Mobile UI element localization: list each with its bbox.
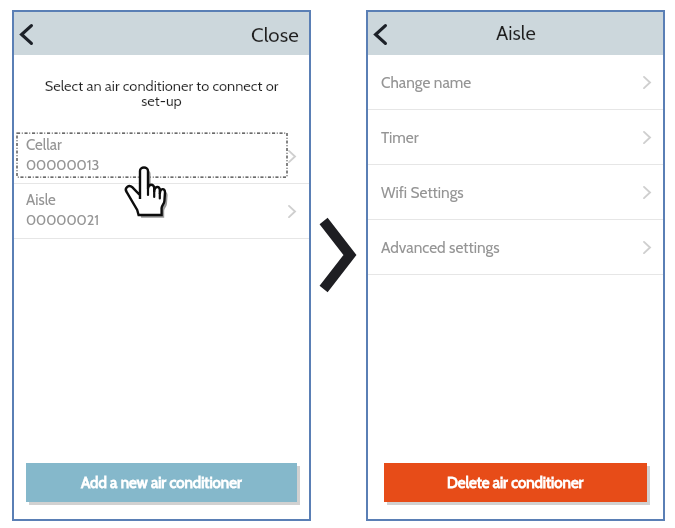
staticText: Add a new air conditioner (81, 474, 242, 492)
staticText: 00000013 (26, 156, 100, 174)
button[interactable]: Aisle (12, 184, 311, 238)
staticText: Aisle (26, 191, 56, 209)
button[interactable]: Wifi Settings (366, 165, 665, 219)
staticText: Advanced settings (381, 238, 500, 257)
button[interactable]: Change name (366, 55, 665, 109)
button[interactable]: Back (12, 10, 52, 55)
staticText: Timer (381, 128, 419, 147)
staticText: Wifi Settings (381, 183, 464, 202)
staticText: Change name (381, 73, 472, 92)
button[interactable]: Delete air conditioner (384, 463, 647, 502)
staticText: Select an air conditioner to connect or … (34, 77, 289, 109)
staticText: Close (251, 22, 299, 47)
staticText: 00000021 (26, 211, 100, 229)
staticText: Aisle (496, 21, 536, 45)
button[interactable]: Advanced settings (366, 220, 665, 274)
staticText: Delete air conditioner (447, 474, 584, 492)
button[interactable]: Cellar (12, 129, 311, 183)
button[interactable]: Timer (366, 110, 665, 164)
button[interactable]: Add a new air conditioner (26, 463, 297, 502)
staticText: Cellar (26, 136, 62, 154)
button[interactable]: Close (239, 11, 311, 54)
button[interactable]: Back (366, 10, 406, 55)
